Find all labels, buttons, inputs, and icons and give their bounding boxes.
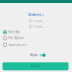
button[interactable]: Free Edn (3, 30, 33, 35)
staticText: All netwo ... (29, 25, 47, 28)
staticText: Pre Edition (8, 36, 24, 40)
button[interactable]: Pre Edition (3, 36, 33, 41)
staticText: Submit (30, 64, 40, 68)
staticText: SuperURL Vis (8, 43, 26, 46)
button[interactable]: SuperURL Vis (3, 42, 33, 47)
button[interactable]: Submit (2, 62, 68, 70)
staticText: All netwo ... (29, 19, 47, 23)
staticText: Status :- (28, 11, 44, 17)
staticText: Wizard (30, 53, 38, 57)
button[interactable]: Wizard (39, 53, 46, 57)
staticText: Free Edn (8, 30, 20, 34)
